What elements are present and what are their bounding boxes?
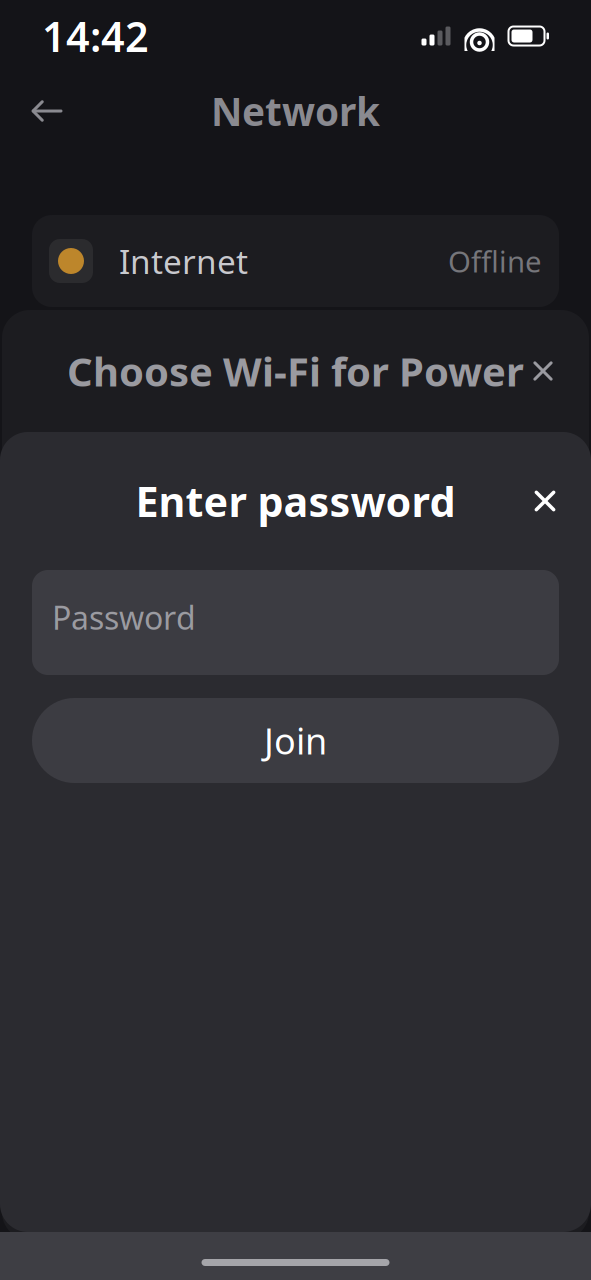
staticText: Join xyxy=(264,717,327,764)
staticText: Internet xyxy=(119,239,248,283)
staticText: Offline xyxy=(448,241,542,280)
staticText: Enter password xyxy=(135,474,455,528)
button[interactable]: Back xyxy=(16,82,78,140)
staticText: 14:42 xyxy=(42,9,149,63)
button[interactable]: Close xyxy=(516,472,574,530)
staticText: Network xyxy=(211,85,380,137)
staticText: Password xyxy=(52,596,196,638)
button[interactable]: Join xyxy=(32,698,559,783)
staticText: Choose Wi-Fi for Power xyxy=(67,344,524,397)
button[interactable]: Password xyxy=(32,570,559,675)
button[interactable]: Close xyxy=(515,343,571,399)
button[interactable]: Internet xyxy=(32,215,559,307)
